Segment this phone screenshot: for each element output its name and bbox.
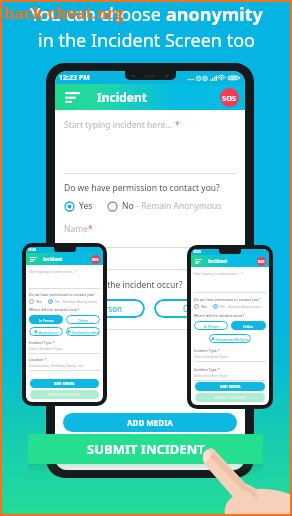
staticText: ADD MEDIA: [54, 381, 75, 386]
staticText: Involved Incident: [72, 330, 99, 334]
staticText: Incident: [43, 256, 63, 262]
staticText: Select Incident Type: [194, 354, 228, 359]
button[interactable]: option: [194, 304, 199, 309]
button[interactable]: Online: [231, 321, 266, 330]
button[interactable]: SUBMIT INCIDENT: [63, 436, 237, 454]
staticText: Start typing incident here... *: [194, 271, 243, 276]
button[interactable]: ADD MEDIA: [63, 413, 237, 432]
button[interactable]: Online: [66, 315, 100, 324]
button[interactable]: Menu: [29, 255, 38, 264]
button[interactable]: SOS emergency: [220, 88, 239, 107]
staticText: Anonymous: [39, 330, 58, 334]
button[interactable]: Menu: [194, 257, 203, 266]
button[interactable]: SUBMIT INCIDENT: [195, 393, 265, 402]
staticText: No: [122, 200, 134, 212]
button[interactable]: Online: [154, 299, 236, 318]
staticText: SUBMIT INCIDENT: [214, 395, 247, 400]
staticText: In Person: [204, 324, 219, 328]
button[interactable]: Anonymous: [29, 327, 63, 336]
button[interactable]: SOS emergency: [257, 257, 266, 266]
staticText: ADD MEDIA: [127, 417, 173, 428]
staticText: ADD MEDIA: [220, 384, 241, 389]
staticText: Harassment/Bullying: [216, 337, 249, 341]
button[interactable]: option: [48, 299, 53, 304]
staticText: Incident Type *: [194, 367, 220, 372]
button[interactable]: Harassment/Bullying: [209, 334, 251, 343]
staticText: SOS: [222, 93, 237, 103]
staticText: in the Incident Screen too: [38, 28, 255, 53]
staticText: Do we have permission to contact you?: [194, 297, 260, 302]
button[interactable]: SOS emergency: [91, 255, 100, 264]
staticText: 12:23 PM: [59, 73, 90, 83]
staticText: Where did the incident occur?: [29, 307, 80, 312]
staticText: Incident Type *: [194, 348, 220, 353]
button[interactable]: No: [107, 201, 118, 212]
staticText: Online: [78, 318, 89, 322]
staticText: Start typing incident here...: [64, 119, 175, 131]
staticText: Start typing incident here... *: [29, 269, 78, 274]
staticText: hack-cheat.org: [4, 2, 125, 24]
staticText: Incident Type *: [29, 340, 55, 345]
button[interactable]: In Person: [194, 321, 228, 330]
staticText: Where did the incident occur?: [64, 279, 183, 291]
staticText: No - Remain Anonymous: [220, 304, 262, 309]
staticText: Do we have permission to contact you?: [64, 182, 220, 194]
button[interactable]: ADD MEDIA: [195, 382, 265, 391]
button[interactable]: SUBMIT INCIDENT: [30, 390, 99, 399]
staticText: Incident: [97, 89, 148, 105]
staticText: Yes: [79, 200, 93, 212]
button[interactable]: option: [29, 299, 34, 304]
staticText: Incident: [208, 258, 228, 264]
staticText: Yes: [201, 304, 207, 309]
staticText: Online: [183, 303, 208, 314]
staticText: Select Incident Type: [194, 373, 228, 378]
staticText: SUBMIT INCIDENT: [87, 440, 205, 458]
staticText: Online: [243, 324, 254, 328]
staticText: 12:23: [28, 248, 37, 252]
staticText: Select Incident Type: [29, 346, 63, 351]
button[interactable]: Involved Incident: [66, 327, 100, 336]
button[interactable]: In Person: [29, 315, 63, 324]
staticText: *: [175, 119, 180, 131]
staticText: 12:23: [193, 250, 202, 254]
staticText: You can choose: [30, 2, 166, 27]
staticText: Name: [64, 223, 88, 235]
staticText: *: [88, 223, 93, 235]
staticText: anonymity: [166, 2, 263, 27]
button[interactable]: ADD MEDIA: [30, 379, 99, 388]
staticText: SUBMIT INCIDENT: [48, 392, 81, 397]
button[interactable]: Menu: [63, 88, 81, 106]
staticText: Location *: [29, 357, 47, 362]
staticText: Intersection, Building Name, etc: [29, 363, 84, 368]
button[interactable]: In Person: [64, 299, 145, 318]
staticText: Do we have permission to contact you?: [29, 292, 95, 297]
button[interactable]: option: [213, 304, 218, 309]
staticText: SUBMIT INCIDENT: [114, 440, 187, 451]
button[interactable]: Yes selected: [64, 201, 75, 212]
staticText: SOS: [92, 257, 99, 262]
staticText: No - Remain Anonymous: [55, 299, 97, 304]
staticText: Where did the incident occur?: [194, 313, 245, 318]
staticText: Yes: [36, 299, 42, 304]
staticText: In Person: [39, 318, 54, 322]
staticText: SOS: [258, 259, 265, 264]
staticText: In Person: [86, 303, 123, 314]
staticText: - Remain Anonymous: [134, 200, 222, 212]
button[interactable]: SUBMIT INCIDENT: [28, 434, 263, 464]
